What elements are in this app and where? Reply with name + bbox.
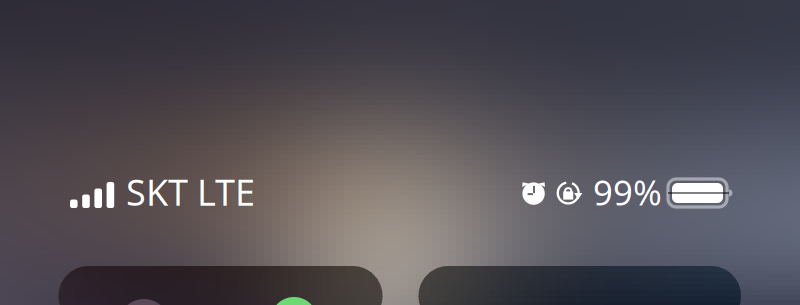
staticText: 99% [593,169,662,215]
staticText: SKT LTE [126,168,255,216]
button[interactable]: Widget [418,266,741,305]
button[interactable]: Widget [58,266,382,305]
